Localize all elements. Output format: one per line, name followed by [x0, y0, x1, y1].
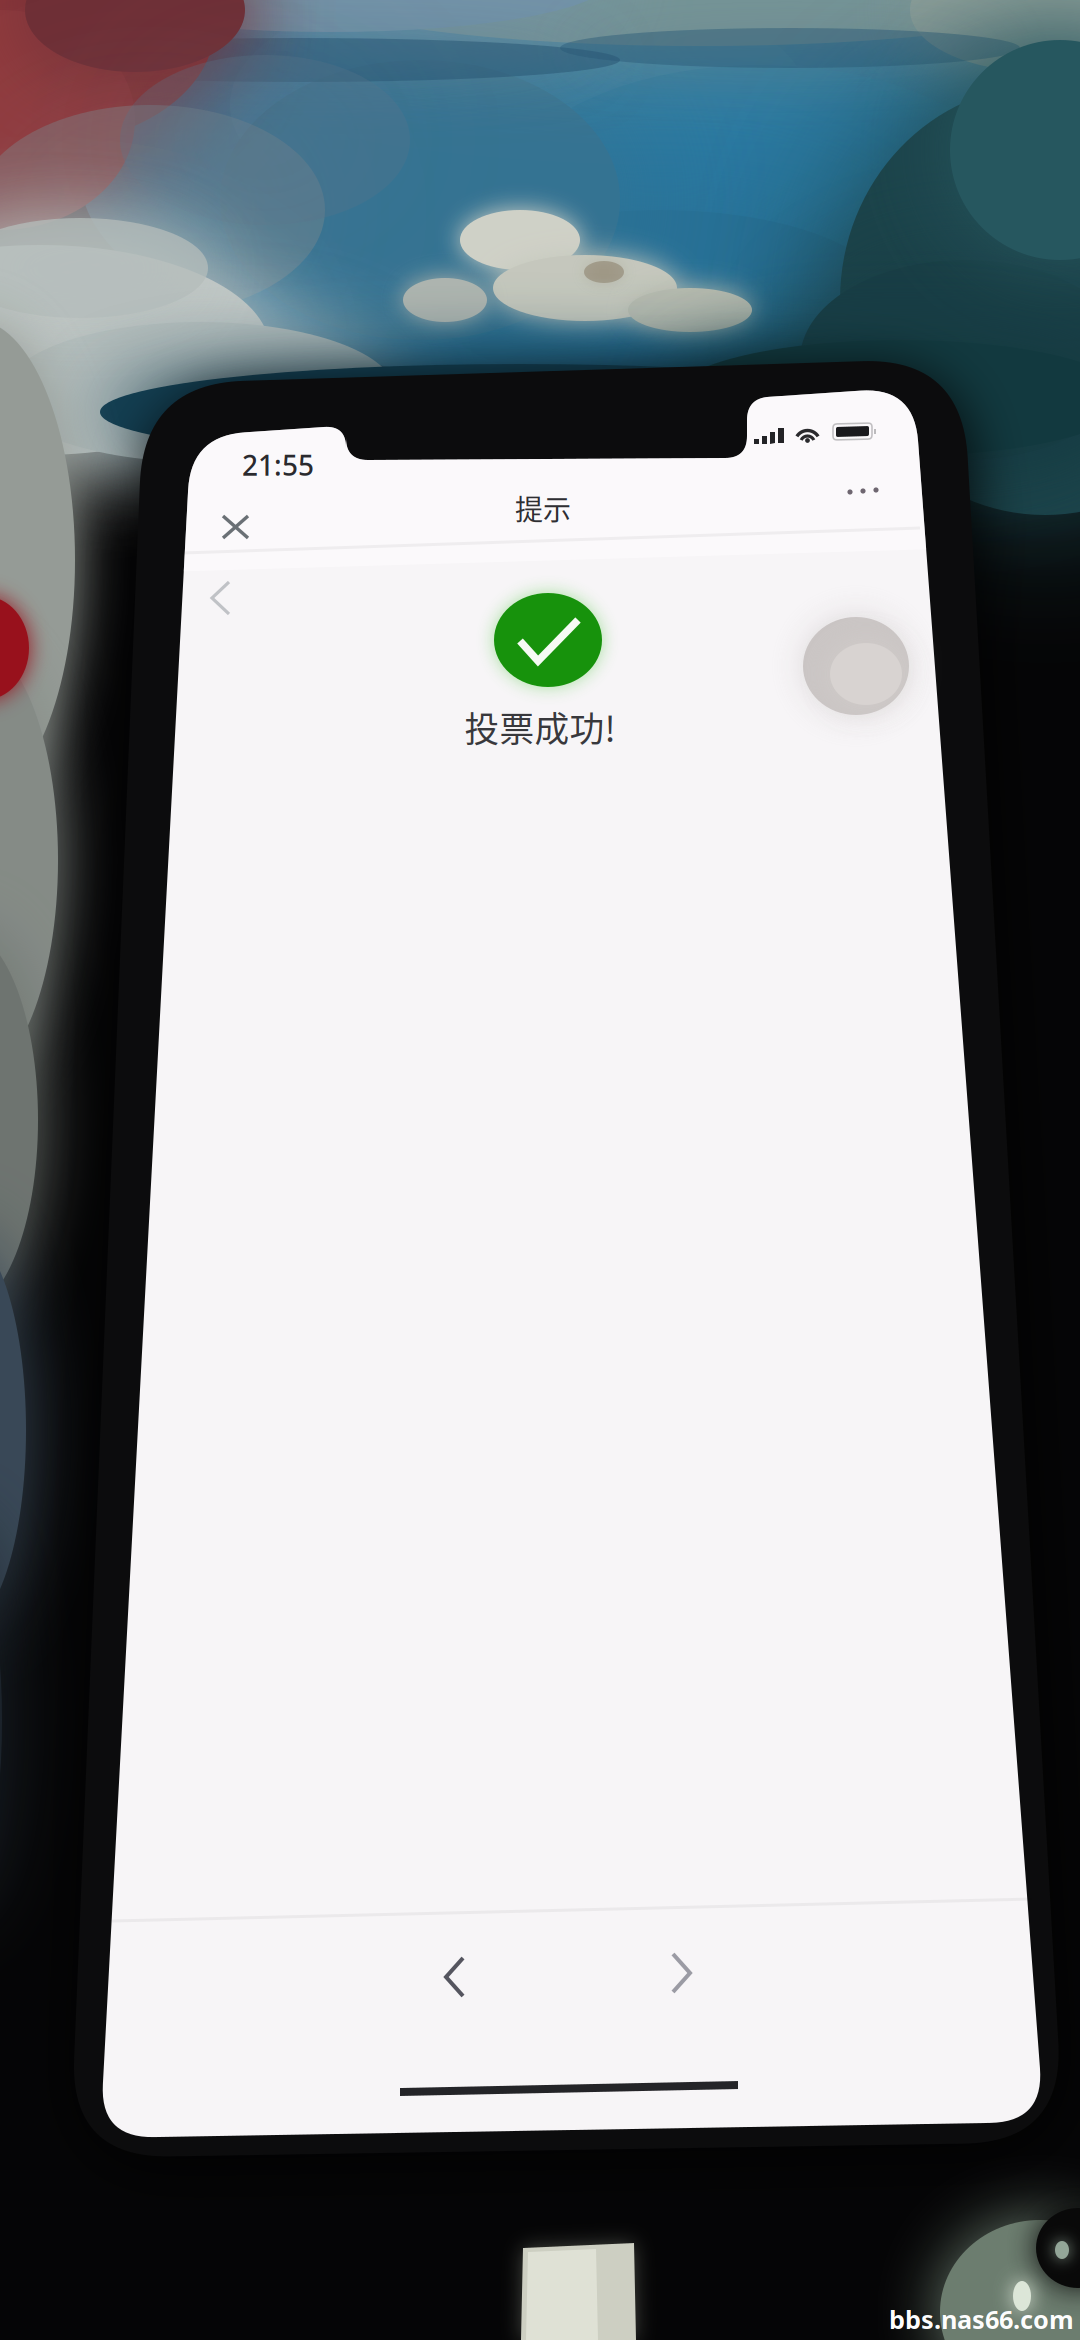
button[interactable]: More [0, 0, 1080, 2340]
button[interactable]: Back [0, 0, 1080, 2340]
staticText: 投票成功! [464, 702, 615, 752]
button[interactable]: Action [0, 0, 1080, 2340]
staticText: 21:55 [242, 446, 314, 484]
button[interactable]: Forward [0, 0, 1080, 2340]
button[interactable]: Back [0, 0, 1080, 2340]
staticText: bbs.nas66.com [889, 2302, 1074, 2336]
button[interactable]: Close [0, 0, 1080, 2340]
staticText: 提示 [515, 488, 571, 528]
